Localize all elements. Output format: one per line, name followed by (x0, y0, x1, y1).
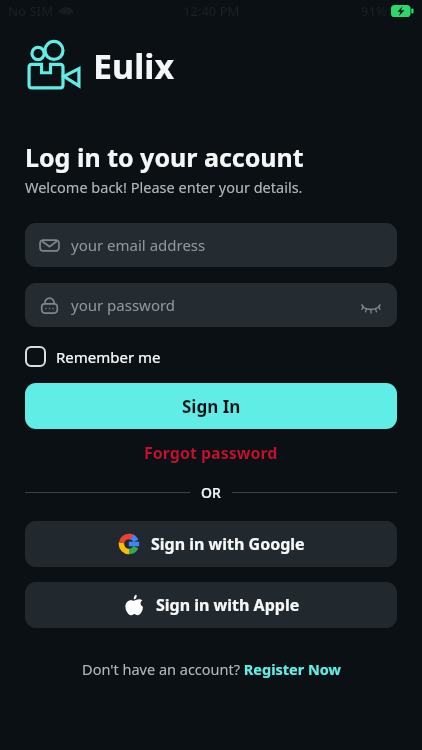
staticText: Welcome back! Please enter your details. (25, 177, 303, 197)
staticText: Sign in with Apple (156, 594, 300, 616)
staticText: 91% (361, 2, 387, 20)
button[interactable]: your password (25, 283, 397, 327)
button[interactable]: Sign In (25, 383, 397, 429)
staticText: your password (71, 295, 176, 315)
staticText: Don't have an account? Register Now (82, 659, 341, 679)
staticText: Remember me (56, 347, 161, 367)
button[interactable]: Show password (359, 293, 383, 317)
staticText: your email address (71, 235, 206, 255)
staticText: 12:40 PM (183, 2, 240, 20)
staticText: No SIM (8, 2, 54, 20)
button[interactable]: Sign in with Apple (25, 582, 397, 628)
staticText: Forgot password (144, 442, 278, 464)
staticText: Sign In (182, 395, 241, 418)
staticText: Log in to your account (25, 140, 304, 174)
button[interactable]: Don't have an account? Register Now (0, 659, 422, 679)
staticText: Sign in with Google (151, 533, 305, 555)
button[interactable]: Sign in with Google (25, 521, 397, 567)
staticText: Eulix (93, 43, 175, 89)
button[interactable]: Forgot password (25, 442, 397, 464)
button[interactable]: Remember me (25, 344, 161, 369)
staticText: OR (201, 483, 221, 502)
button[interactable]: your email address (25, 223, 397, 267)
